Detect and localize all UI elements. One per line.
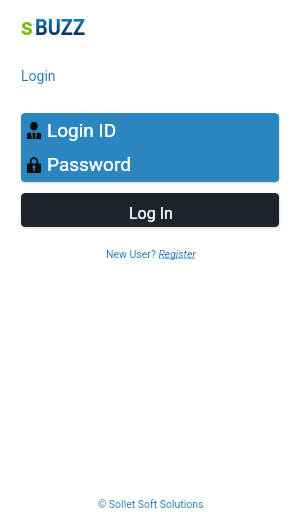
staticText: BUZZ (35, 15, 86, 41)
button[interactable]: New User? Register (104, 248, 198, 260)
button[interactable]: Log In (21, 193, 279, 227)
staticText: Password (47, 153, 131, 175)
button[interactable]: Password (21, 148, 279, 182)
button[interactable]: User account (21, 113, 279, 148)
staticText: Log In (129, 204, 173, 223)
staticText: © Sollet Soft Solutions (98, 498, 204, 510)
other: User account (27, 122, 41, 139)
other: Password (27, 157, 41, 173)
staticText: Login (21, 68, 56, 84)
staticText: s (21, 14, 33, 41)
staticText: Login ID (47, 119, 117, 141)
